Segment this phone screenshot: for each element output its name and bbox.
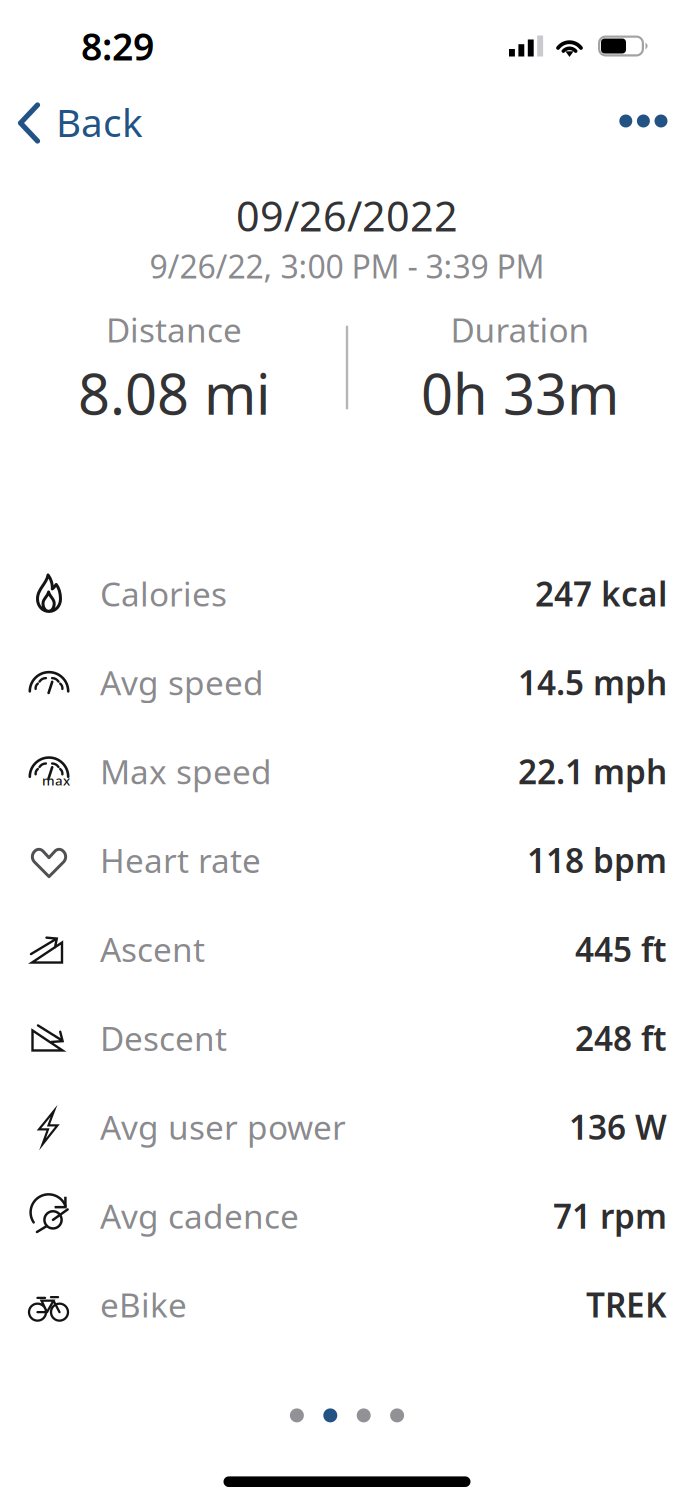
- button[interactable]: Descent: [0, 993, 694, 1082]
- staticText: Avg user power: [100, 1105, 346, 1149]
- staticText: 136 W: [569, 1105, 667, 1149]
- staticText: Max speed: [100, 749, 272, 793]
- button[interactable]: Avg cadence: [0, 1171, 694, 1260]
- staticText: Back: [56, 96, 143, 148]
- staticText: 248 ft: [575, 1016, 667, 1060]
- staticText: 0h 33m: [421, 356, 619, 430]
- staticText: Descent: [100, 1016, 227, 1060]
- staticText: Duration: [450, 307, 589, 352]
- button[interactable]: max: [0, 727, 694, 816]
- staticText: 22.1 mph: [518, 749, 667, 793]
- button[interactable]: Heart rate: [0, 816, 694, 905]
- staticText: 445 ft: [575, 927, 667, 971]
- staticText: 118 bpm: [527, 838, 667, 882]
- staticText: Avg speed: [100, 660, 264, 704]
- staticText: Heart rate: [100, 838, 261, 882]
- button[interactable]: Avg speed: [0, 638, 694, 727]
- button[interactable]: Avg user power: [0, 1082, 694, 1171]
- staticText: 71 rpm: [553, 1194, 667, 1238]
- button[interactable]: Back: [2, 97, 159, 149]
- staticText: max: [42, 771, 70, 789]
- staticText: Avg cadence: [100, 1194, 299, 1238]
- button[interactable]: More options: [599, 97, 688, 149]
- staticText: 14.5 mph: [518, 660, 667, 704]
- staticText: Calories: [100, 571, 227, 616]
- staticText: 8.08 mi: [78, 356, 270, 430]
- button[interactable]: Ascent: [0, 905, 694, 993]
- staticText: TREK: [586, 1282, 667, 1327]
- staticText: eBike: [100, 1282, 187, 1327]
- staticText: 8:29: [81, 21, 154, 71]
- staticText: Ascent: [100, 927, 205, 971]
- staticText: Distance: [106, 307, 242, 352]
- button[interactable]: Calories: [0, 549, 694, 638]
- staticText: 9/26/22, 3:00 PM - 3:39 PM: [149, 245, 544, 287]
- staticText: 09/26/2022: [236, 188, 458, 243]
- button[interactable]: eBike: [0, 1260, 694, 1349]
- staticText: 247 kcal: [535, 571, 667, 616]
